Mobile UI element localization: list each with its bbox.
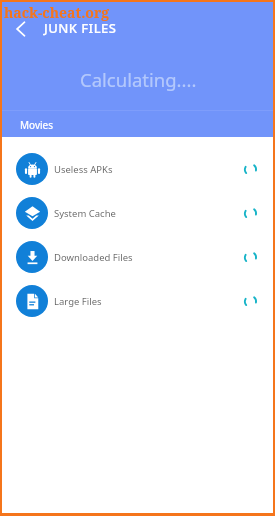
staticText: hack-cheat.org (4, 3, 110, 22)
staticText: System Cache (54, 207, 116, 220)
button[interactable]: Downloaded Files (2, 235, 273, 279)
staticText: Downloaded Files (54, 251, 133, 264)
staticText: Movies (20, 118, 54, 132)
button[interactable]: Useless APKs (2, 147, 273, 191)
button[interactable]: Movies (2, 111, 273, 138)
button[interactable]: Back (6, 14, 35, 43)
staticText: Useless APKs (54, 163, 113, 176)
staticText: Calculating.... (80, 67, 197, 92)
staticText: JUNK FILES (44, 19, 117, 37)
staticText: Large Files (54, 295, 102, 308)
button[interactable]: System Cache (2, 191, 273, 235)
button[interactable]: Large Files (2, 279, 273, 323)
